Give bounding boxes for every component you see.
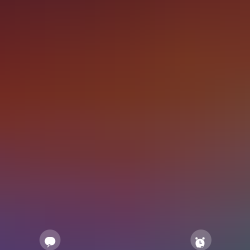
button[interactable]: Alarm xyxy=(190,229,211,250)
button[interactable]: Messages xyxy=(39,229,60,250)
